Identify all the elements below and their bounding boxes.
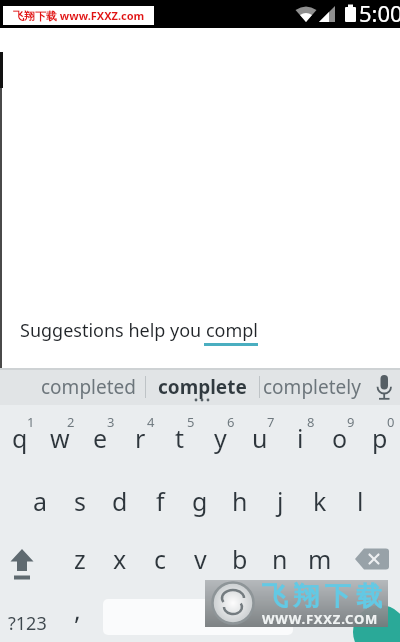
button[interactable] [300, 523, 340, 582]
button[interactable] [368, 370, 400, 403]
button[interactable] [140, 523, 180, 582]
button[interactable] [100, 464, 140, 523]
staticText: 6 [227, 413, 235, 427]
staticText: o [332, 421, 348, 455]
staticText: 5 [187, 413, 195, 427]
button[interactable] [280, 405, 320, 464]
staticText: 8 [307, 413, 315, 427]
staticText: f [156, 484, 165, 518]
button[interactable] [220, 523, 260, 582]
button[interactable] [320, 405, 360, 464]
staticText: u [252, 421, 268, 455]
staticText: 飞翔下载 [259, 580, 385, 613]
staticText: g [192, 484, 208, 518]
staticText: y [214, 421, 227, 455]
staticText: r [135, 421, 146, 455]
button[interactable] [120, 405, 160, 464]
button[interactable] [240, 405, 280, 464]
button[interactable] [260, 523, 300, 582]
staticText: completed [41, 374, 136, 400]
button[interactable] [353, 605, 400, 642]
staticText: 3 [107, 413, 115, 427]
button[interactable] [140, 464, 180, 523]
button[interactable] [0, 582, 55, 642]
button[interactable] [360, 405, 400, 464]
button[interactable] [60, 464, 100, 523]
staticText: l [357, 484, 364, 518]
button[interactable] [40, 405, 80, 464]
staticText: 4 [147, 413, 155, 427]
button[interactable] [80, 405, 120, 464]
button[interactable] [100, 523, 140, 582]
staticText: d [112, 484, 128, 518]
button[interactable] [160, 405, 200, 464]
staticText: 飞翔下载 www.FXXZ.com [13, 8, 145, 23]
staticText: t [175, 421, 185, 455]
button[interactable] [0, 405, 40, 464]
staticText: i [297, 421, 304, 455]
button[interactable] [180, 523, 220, 582]
staticText: q [12, 421, 28, 455]
staticText: 5:00 [359, 0, 400, 26]
button[interactable] [220, 464, 260, 523]
staticText: w [50, 421, 70, 455]
staticText: m [308, 542, 332, 576]
staticText: h [232, 484, 248, 518]
staticText: , [74, 593, 81, 627]
button[interactable] [60, 523, 100, 582]
staticText: z [74, 542, 86, 576]
button[interactable] [340, 523, 400, 582]
staticText: 1 [27, 413, 35, 427]
button[interactable] [0, 523, 60, 582]
staticText: 2 [67, 413, 75, 427]
staticText: 9 [347, 413, 355, 427]
staticText: 0 [387, 413, 395, 427]
staticText: 7 [267, 413, 275, 427]
button[interactable] [200, 405, 240, 464]
button[interactable] [340, 464, 380, 523]
staticText: complete [158, 374, 247, 400]
button[interactable]: completely [260, 368, 364, 405]
button[interactable] [300, 464, 340, 523]
staticText: WWW.FXXZ.COM [262, 610, 379, 628]
staticText: e [93, 421, 108, 455]
button[interactable]: , [55, 580, 100, 640]
staticText: v [194, 542, 207, 576]
button[interactable]: complete [147, 368, 257, 405]
staticText: b [232, 542, 248, 576]
staticText: s [74, 484, 86, 518]
staticText: k [313, 484, 327, 518]
staticText: completely [263, 374, 361, 400]
button[interactable] [180, 464, 220, 523]
button[interactable] [20, 464, 60, 523]
button[interactable] [103, 599, 293, 635]
staticText: ?123 [8, 611, 47, 636]
staticText: p [372, 421, 388, 455]
staticText: c [154, 542, 167, 576]
staticText: a [33, 484, 48, 518]
staticText: x [113, 542, 127, 576]
button[interactable] [260, 464, 300, 523]
staticText: Suggestions help you compl [20, 318, 258, 343]
button[interactable]: completed [33, 368, 143, 405]
staticText: n [272, 542, 288, 576]
staticText: j [277, 484, 284, 518]
